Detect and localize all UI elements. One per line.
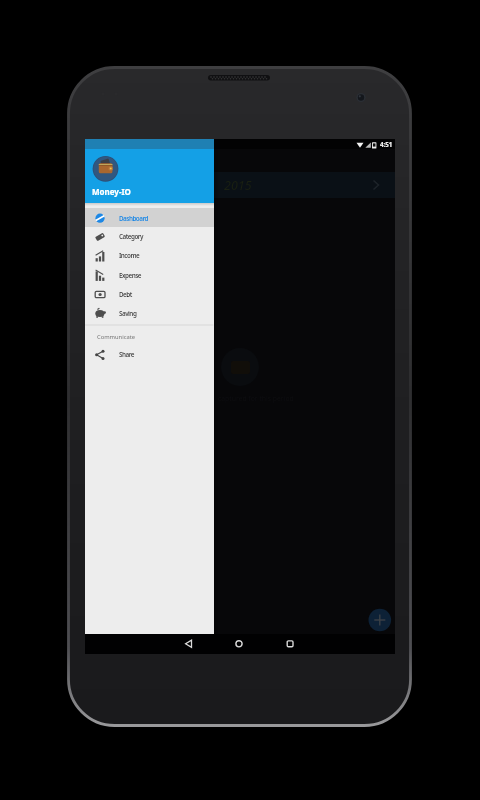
button[interactable] xyxy=(85,266,214,285)
staticText: Saving xyxy=(119,309,137,318)
staticText: Income xyxy=(119,251,140,260)
button[interactable] xyxy=(85,208,214,227)
button[interactable] xyxy=(173,634,204,654)
staticText: Category xyxy=(119,232,143,241)
button[interactable] xyxy=(85,304,214,323)
button[interactable] xyxy=(85,247,214,266)
staticText: Debt xyxy=(119,290,132,299)
staticText: Communicate xyxy=(97,333,136,341)
button[interactable] xyxy=(85,345,214,364)
button[interactable] xyxy=(369,609,392,632)
button[interactable] xyxy=(85,285,214,304)
button[interactable] xyxy=(275,634,306,654)
button[interactable] xyxy=(224,634,255,654)
button[interactable] xyxy=(205,172,395,198)
button[interactable] xyxy=(85,227,214,246)
staticText: 2015 xyxy=(224,177,252,194)
staticText: Dashboard xyxy=(119,214,148,223)
staticText: Expense xyxy=(119,271,141,280)
staticText: Money-IO xyxy=(92,186,131,197)
staticText: Share xyxy=(119,350,134,359)
staticText: 4:51 xyxy=(380,140,393,148)
